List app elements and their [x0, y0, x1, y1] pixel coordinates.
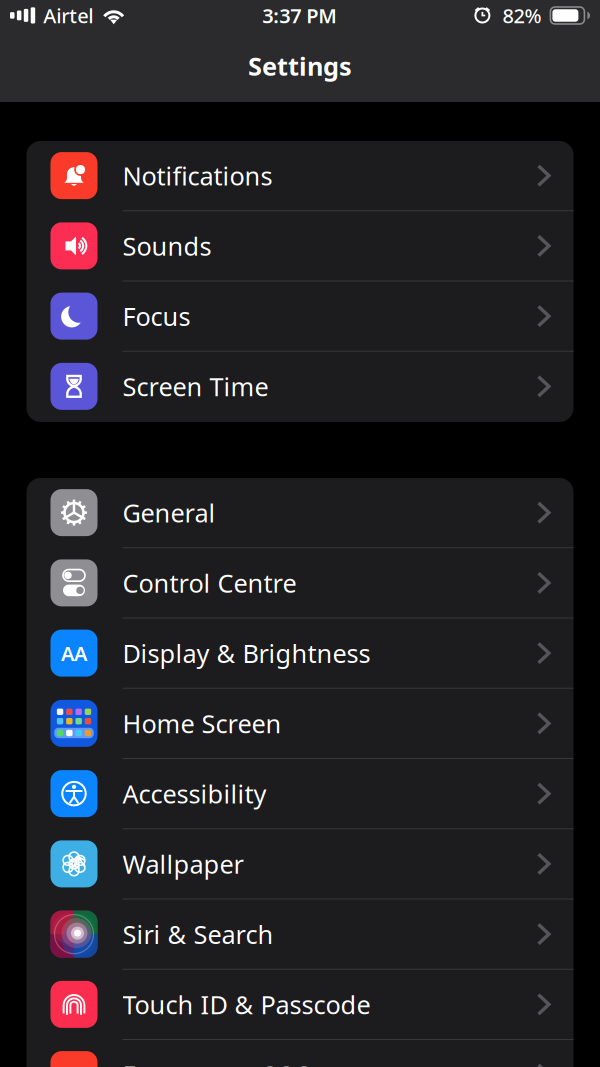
staticText: Control Centre — [122, 566, 296, 600]
button[interactable]: Touch ID & Passcode — [26, 970, 573, 1040]
button[interactable]: Control Centre — [26, 548, 573, 618]
staticText: Notifications — [122, 159, 272, 192]
staticText: Home Screen — [122, 707, 281, 740]
button[interactable]: Siri & Search — [26, 899, 573, 970]
staticText: 82% — [502, 2, 541, 29]
button[interactable]: Accessibility — [26, 759, 573, 829]
staticText: Accessibility — [122, 777, 266, 810]
staticText: Siri & Search — [122, 917, 273, 951]
button[interactable]: Home Screen — [26, 689, 573, 759]
staticText: 3:37 PM — [262, 2, 337, 29]
staticText: Focus — [122, 299, 190, 333]
button[interactable]: Focus — [26, 281, 573, 352]
button[interactable]: Notifications — [26, 141, 573, 211]
staticText: Screen Time — [122, 370, 268, 403]
button[interactable]: Sounds — [26, 211, 573, 281]
button[interactable]: Wallpaper — [26, 829, 573, 899]
staticText: AA — [61, 640, 87, 666]
button[interactable]: AA — [26, 618, 573, 689]
staticText: Emergency SOS — [122, 1058, 310, 1067]
staticText: Settings — [248, 49, 352, 83]
button[interactable]: Screen Time — [26, 352, 573, 422]
button[interactable]: SOS — [26, 1040, 573, 1067]
staticText: Display & Brightness — [122, 636, 370, 670]
staticText: Airtel — [43, 2, 93, 29]
staticText: Wallpaper — [122, 847, 243, 881]
button[interactable]: General — [26, 478, 573, 548]
staticText: Touch ID & Passcode — [122, 988, 370, 1021]
staticText: General — [122, 496, 215, 529]
staticText: Sounds — [122, 229, 211, 263]
